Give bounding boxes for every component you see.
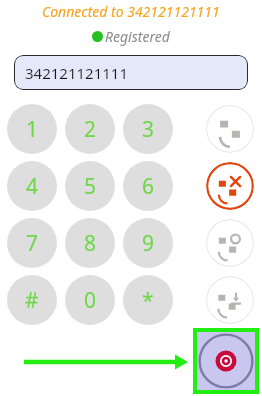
button[interactable]: Hold call	[206, 219, 254, 267]
button[interactable]: Call	[206, 105, 254, 153]
staticText: 7	[26, 229, 39, 258]
button[interactable]: 3	[123, 104, 173, 154]
staticText: 0	[84, 286, 97, 315]
staticText: 342121121111	[25, 63, 128, 83]
staticText: #	[25, 286, 39, 315]
button[interactable]: 6	[123, 161, 173, 211]
staticText: 5	[84, 172, 97, 201]
button[interactable]: *	[123, 275, 173, 325]
button[interactable]: 8	[65, 218, 115, 268]
button[interactable]: #	[7, 275, 57, 325]
staticText: 3	[142, 115, 155, 144]
button[interactable]: 342121121111	[14, 55, 248, 90]
button[interactable]: 4	[7, 161, 57, 211]
staticText: 8	[84, 229, 97, 258]
button[interactable]: 7	[7, 218, 57, 268]
button[interactable]: 1	[7, 104, 57, 154]
button[interactable]: End call	[206, 162, 254, 210]
button[interactable]: 9	[123, 218, 173, 268]
button[interactable]: 5	[65, 161, 115, 211]
staticText: *	[142, 286, 154, 315]
button[interactable]: Transfer call	[206, 276, 254, 324]
button[interactable]: 0	[65, 275, 115, 325]
staticText: 1	[26, 115, 39, 144]
staticText: Connected to 342121121111	[42, 2, 220, 21]
staticText: 9	[142, 229, 155, 258]
staticText: 2	[84, 115, 97, 144]
staticText: Registered	[105, 27, 170, 46]
staticText: 4	[26, 172, 39, 201]
button[interactable]: 2	[65, 104, 115, 154]
staticText: 6	[142, 172, 155, 201]
button[interactable]: Record	[197, 332, 255, 390]
